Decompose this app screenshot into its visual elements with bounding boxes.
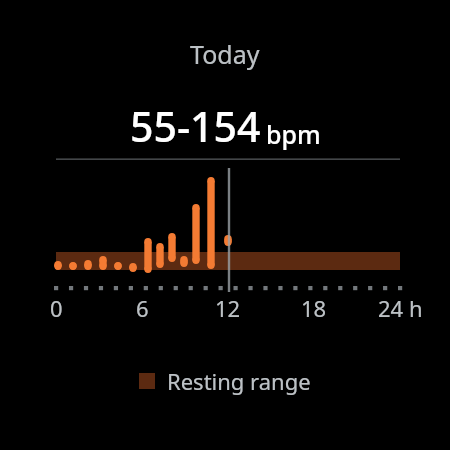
staticText: 12 (215, 293, 241, 323)
staticText: 18 (301, 293, 327, 323)
staticText: Today (190, 37, 260, 71)
staticText: 6 (136, 293, 149, 323)
staticText: 24 h (378, 293, 423, 323)
staticText: Resting range (167, 366, 311, 396)
button[interactable]: Resting range (133, 363, 317, 399)
staticText: 55-154 (130, 98, 261, 154)
staticText: bpm (266, 117, 321, 151)
button[interactable]: Heart rate chart for today (0, 0, 450, 450)
staticText: 0 (50, 293, 63, 323)
